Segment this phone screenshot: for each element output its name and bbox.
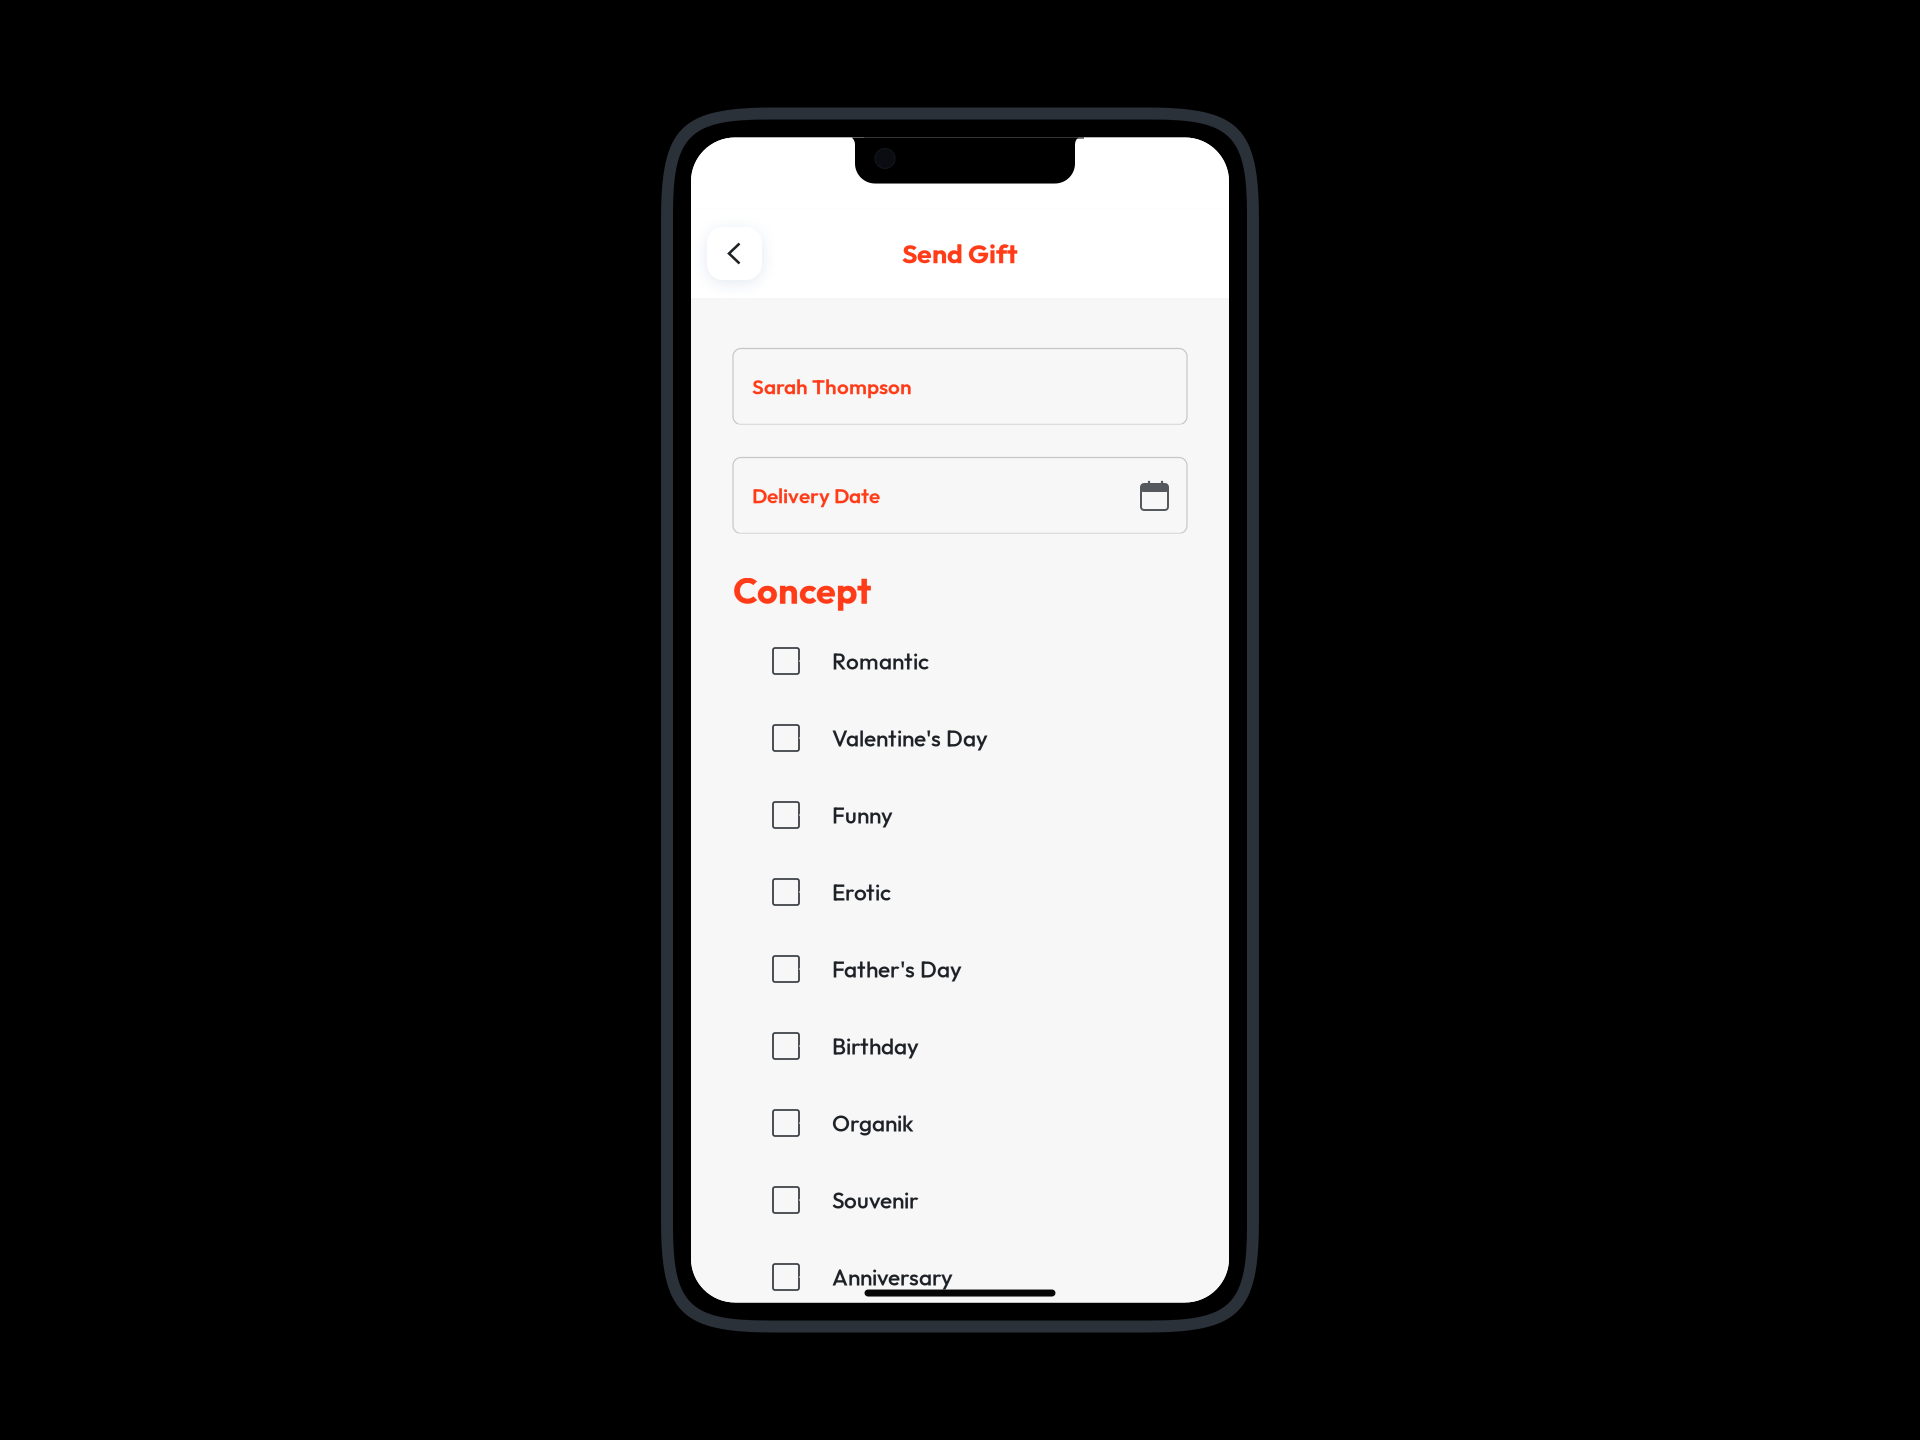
staticText: Concept — [733, 568, 871, 613]
staticText: Birthday — [832, 1032, 919, 1060]
staticText: Sarah Thompson — [752, 373, 912, 399]
staticText: Erotic — [832, 878, 891, 906]
button[interactable]: Anniversary — [691, 1238, 1229, 1315]
button[interactable]: Birthday — [691, 1007, 1229, 1084]
button[interactable]: Valentine's Day — [691, 699, 1229, 776]
button[interactable]: Romantic — [691, 622, 1229, 699]
staticText: Funny — [832, 801, 893, 829]
button[interactable]: Sarah Thompson — [691, 348, 1229, 424]
button[interactable]: Father's Day — [691, 930, 1229, 1007]
staticText: Father's Day — [832, 955, 962, 983]
button[interactable]: Funny — [691, 776, 1229, 853]
staticText: Delivery Date — [752, 482, 880, 508]
button[interactable]: Delivery Date — [691, 457, 1229, 533]
staticText: Souvenir — [832, 1186, 919, 1214]
button[interactable]: Erotic — [691, 853, 1229, 930]
staticText: Organik — [832, 1109, 914, 1137]
staticText: Valentine's Day — [832, 724, 988, 752]
staticText: Anniversary — [832, 1263, 953, 1291]
button[interactable]: Souvenir — [691, 1161, 1229, 1238]
button[interactable]: Organik — [691, 1084, 1229, 1161]
staticText: Send Gift — [902, 237, 1018, 270]
staticText: Romantic — [832, 647, 929, 675]
button[interactable]: Back — [707, 227, 762, 280]
